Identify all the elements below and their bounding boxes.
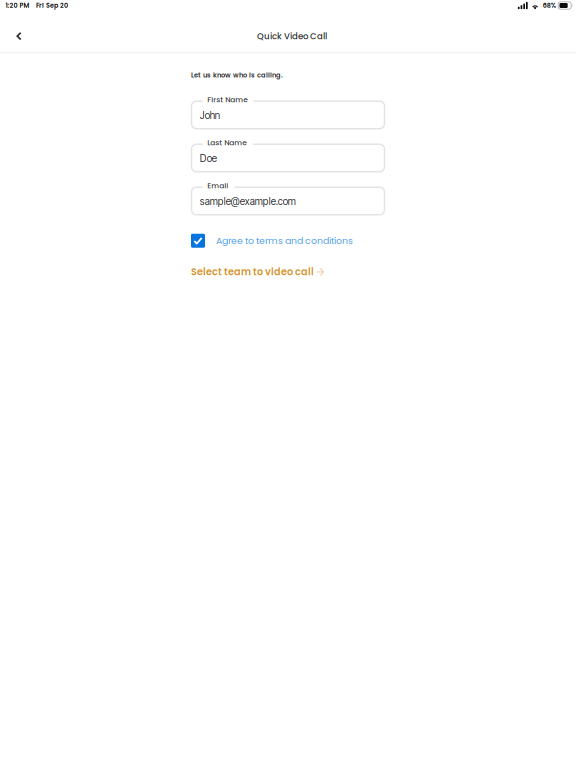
button[interactable]: Agree to terms and conditions xyxy=(191,232,385,250)
staticText: sample@example.com xyxy=(200,195,296,207)
staticText: 68% xyxy=(543,1,556,10)
button[interactable]: Back xyxy=(0,19,34,53)
staticText: Doe xyxy=(200,152,217,164)
staticText: Quick Video Call xyxy=(257,30,327,42)
staticText: Email xyxy=(207,180,228,191)
staticText: First Name xyxy=(207,94,248,105)
staticText: Select team to video call xyxy=(191,265,314,279)
staticText: Agree to terms and conditions xyxy=(216,234,353,247)
button[interactable]: Select team to video call xyxy=(191,263,385,281)
staticText: 1:20 PM xyxy=(5,1,29,10)
staticText: Let us know who is calling. xyxy=(191,71,283,80)
staticText: Fri Sep 20 xyxy=(36,1,68,10)
staticText: John xyxy=(200,109,220,121)
staticText: Last Name xyxy=(207,137,247,148)
